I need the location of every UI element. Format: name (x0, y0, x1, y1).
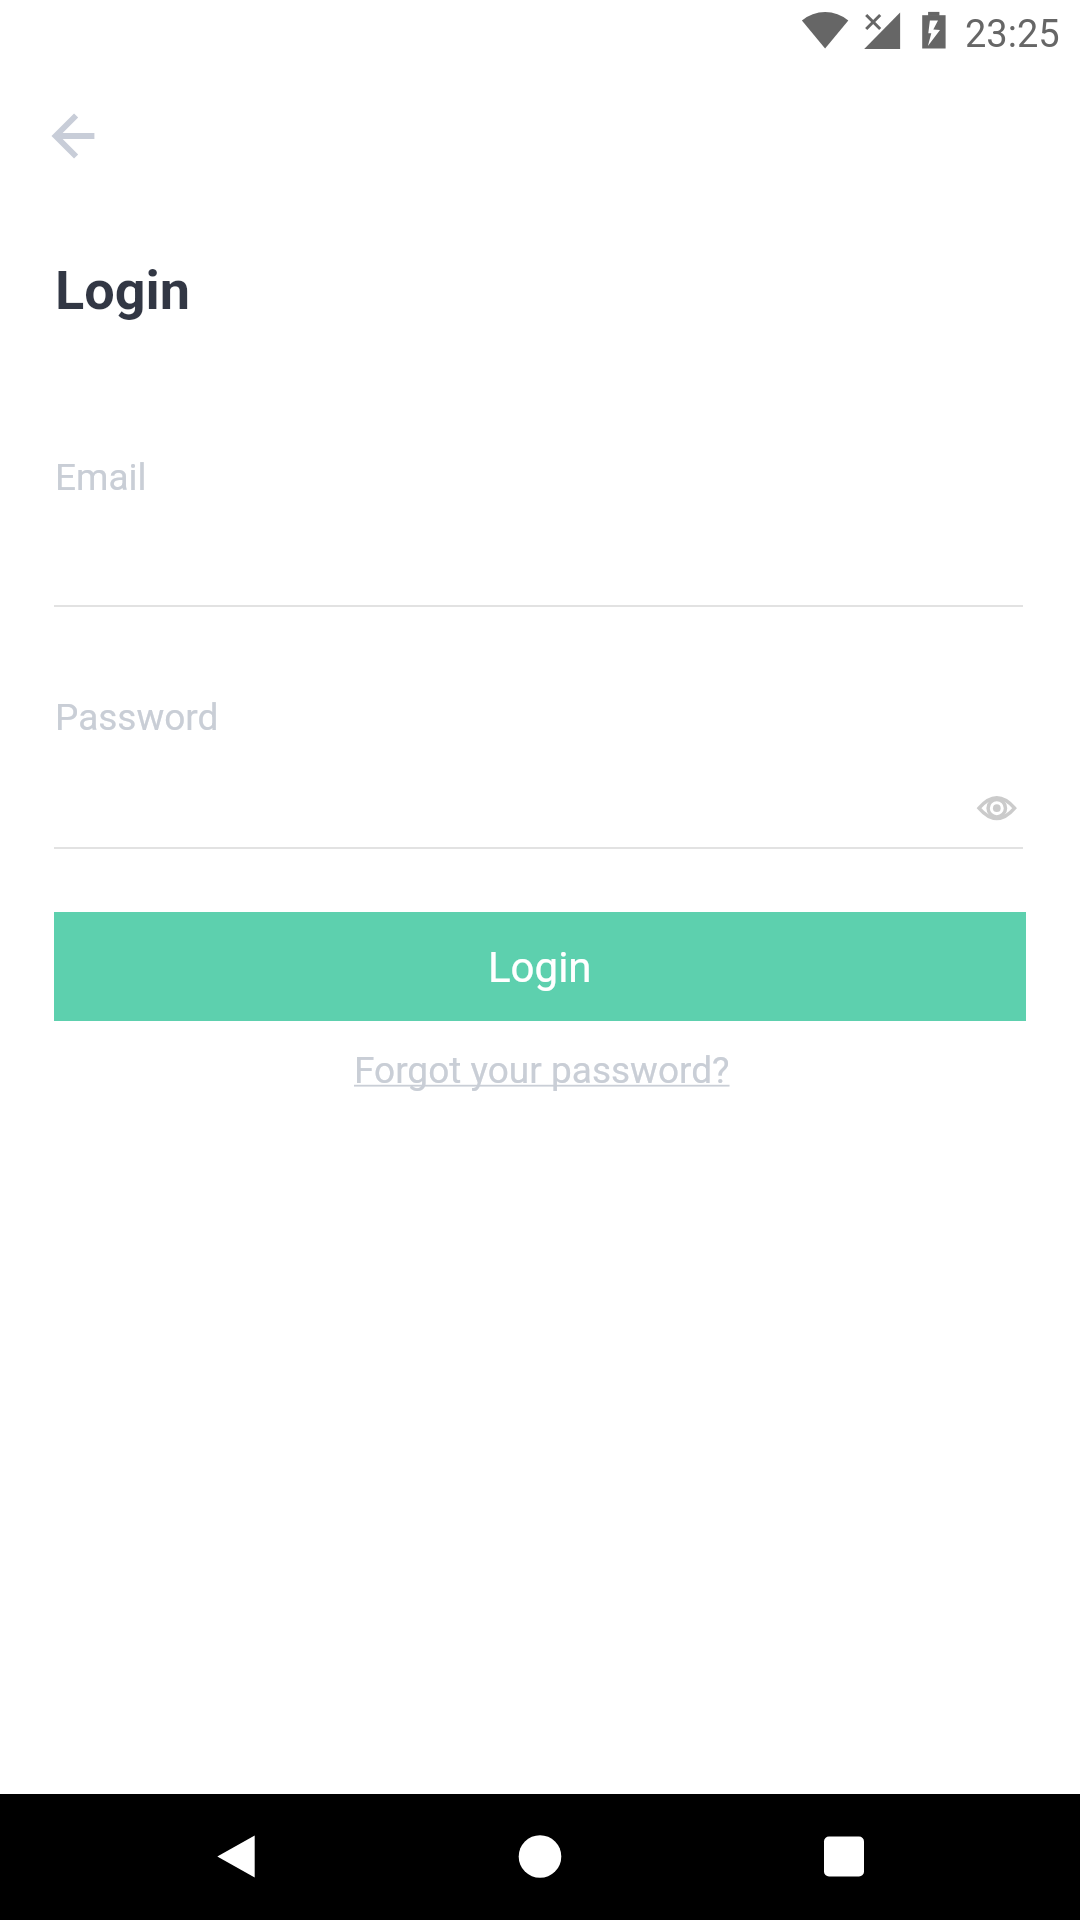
staticText: Login (488, 943, 592, 992)
button[interactable]: Show password (957, 767, 1037, 847)
button[interactable]: Back (36, 96, 116, 176)
staticText: Login (55, 259, 191, 322)
staticText: Forgot your password? (354, 1049, 730, 1092)
staticText: Email (55, 456, 147, 499)
staticText: Password (55, 696, 219, 739)
button[interactable]: Forgot your password? (332, 1041, 752, 1103)
button[interactable]: Login (54, 912, 1026, 1021)
staticText: 23:25 (965, 12, 1060, 57)
